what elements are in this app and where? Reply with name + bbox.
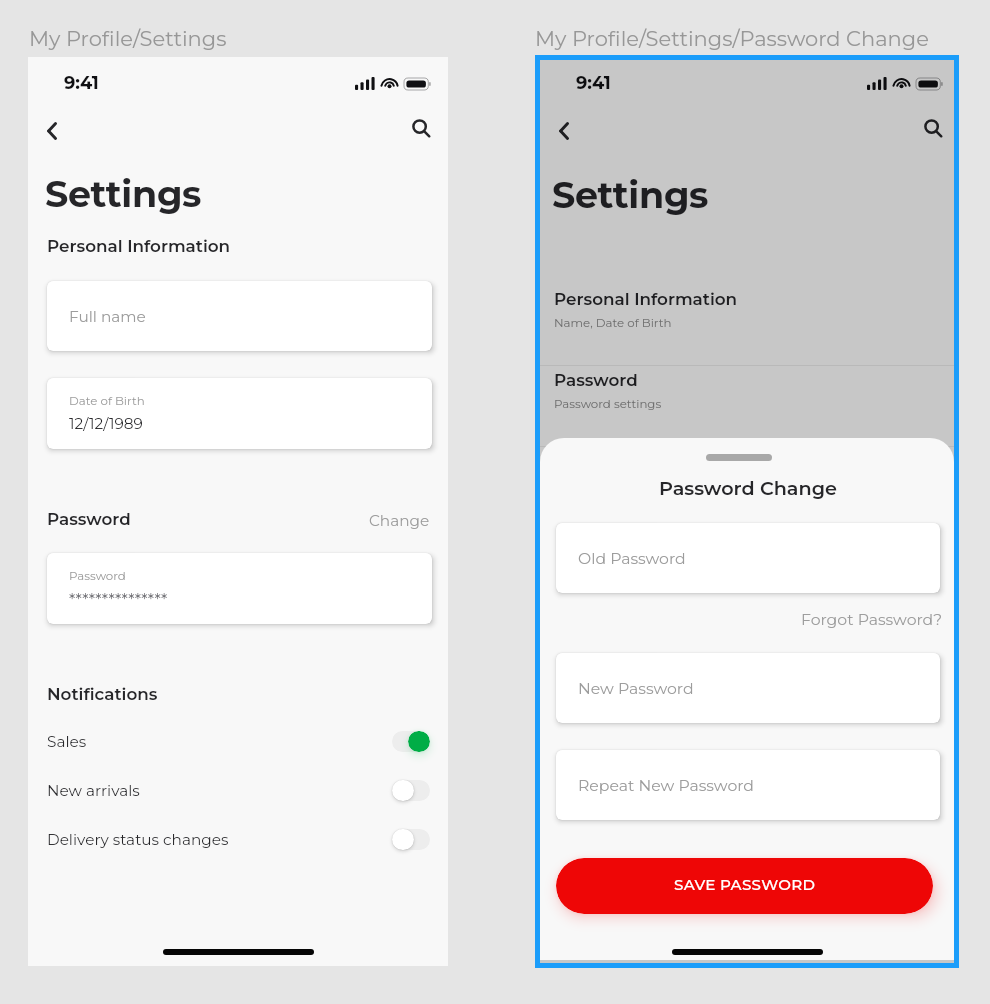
button[interactable]: New Password <box>556 653 940 723</box>
staticText: SAVE PASSWORD <box>674 875 816 893</box>
staticText: My Profile/Settings/Password Change <box>535 26 929 52</box>
button[interactable]: Delivery status changes <box>47 822 430 856</box>
button[interactable]: Sales <box>47 724 430 758</box>
staticText: Notifications <box>47 684 158 704</box>
button[interactable]: Change <box>369 511 430 530</box>
staticText: Personal Information <box>47 236 231 256</box>
staticText: Full name <box>69 307 146 326</box>
staticText: Password <box>69 569 126 583</box>
button[interactable]: Password <box>47 553 432 624</box>
staticText: Forgot Password? <box>801 610 943 629</box>
staticText: Password <box>47 509 131 529</box>
button[interactable]: Search <box>402 109 442 149</box>
staticText: Password settings <box>554 397 662 411</box>
staticText: New arrivals <box>47 781 140 800</box>
button[interactable]: Password <box>540 366 954 447</box>
staticText: Password Change <box>659 476 837 499</box>
staticText: My Profile/Settings <box>29 26 227 52</box>
button[interactable]: Full name <box>47 281 432 351</box>
staticText: Old Password <box>578 549 686 568</box>
button[interactable]: Search <box>914 109 954 149</box>
button[interactable]: Old Password <box>556 523 940 593</box>
staticText: Sales <box>47 732 87 751</box>
staticText: Change <box>369 511 430 530</box>
staticText: Date of Birth <box>69 394 145 408</box>
button[interactable]: New arrivals <box>47 773 430 807</box>
staticText: Personal Information <box>554 289 738 309</box>
staticText: Password <box>554 370 638 390</box>
button[interactable]: Notifications <box>540 447 954 528</box>
button[interactable] <box>540 57 954 964</box>
staticText: Delivery status changes <box>47 830 229 849</box>
button[interactable]: Back <box>32 111 72 151</box>
staticText: Notification settings <box>554 478 674 492</box>
button[interactable]: Back <box>544 111 584 151</box>
staticText: *************** <box>69 590 168 610</box>
button[interactable]: Forgot Password? <box>557 610 943 629</box>
staticText: Settings <box>45 172 202 216</box>
button[interactable]: Personal Information <box>540 285 954 366</box>
button[interactable]: Repeat New Password <box>556 750 940 820</box>
button[interactable]: Date of Birth <box>47 378 432 449</box>
staticText: 9:41 <box>576 72 611 94</box>
staticText: New Password <box>578 679 694 698</box>
staticText: Name, Date of Birth <box>554 316 672 330</box>
staticText: Settings <box>552 173 709 217</box>
button[interactable]: SAVE PASSWORD <box>556 858 933 914</box>
staticText: 12/12/1989 <box>69 414 143 433</box>
staticText: 9:41 <box>64 72 99 94</box>
staticText: Repeat New Password <box>578 776 754 795</box>
